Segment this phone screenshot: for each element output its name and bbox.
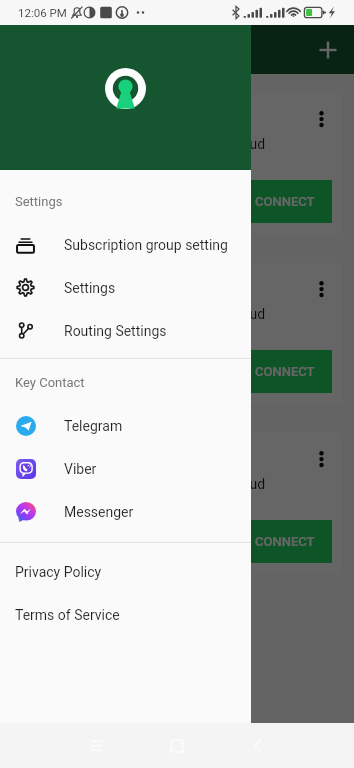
staticText: CONNECT [255, 194, 315, 209]
staticText: Privacy Policy [15, 564, 102, 580]
staticText: Routing Settings [64, 323, 167, 339]
button[interactable]: Subscription group setting [0, 223, 251, 266]
staticText: Subscription group setting [64, 237, 228, 253]
button[interactable]: More options [305, 442, 337, 474]
button[interactable]: Privacy Policy [15, 550, 251, 593]
staticText: Settings [15, 194, 63, 209]
staticText: CONNECT [255, 534, 315, 549]
button[interactable]: Terms of Service [15, 593, 251, 636]
button[interactable]: Viber [0, 447, 251, 490]
button[interactable]: Settings [0, 266, 251, 309]
button[interactable]: Messenger [0, 490, 251, 533]
button[interactable]: VPN Server Profile — Cloud [12, 263, 342, 404]
staticText: Key Contact [15, 375, 85, 390]
button[interactable]: More options [305, 272, 337, 304]
staticText: Messenger [64, 504, 134, 520]
button[interactable]: VPN Server Profile — Cloud [12, 433, 342, 574]
staticText: 12:06 PM [18, 6, 67, 19]
staticText: VPN Server Profile — Cloud [97, 136, 266, 152]
button[interactable]: More options [305, 102, 337, 134]
button[interactable]: CONNECT [237, 520, 332, 563]
staticText: Terms of Service [15, 607, 120, 623]
button[interactable]: Routing Settings [0, 309, 251, 352]
staticText: CONNECT [255, 364, 315, 379]
button[interactable]: CONNECT [237, 180, 332, 223]
staticText: Settings [64, 280, 116, 296]
button[interactable]: Add profile [310, 32, 346, 68]
staticText: VPN Server Profile — Cloud [97, 306, 266, 322]
staticText: Telegram [64, 418, 123, 434]
button[interactable]: VPN Server Profile — Cloud [12, 93, 342, 234]
staticText: Viber [64, 461, 97, 477]
staticText: VPN Server Profile — Cloud [97, 476, 266, 492]
button[interactable]: CONNECT [237, 350, 332, 393]
button[interactable]: Telegram [0, 404, 251, 447]
